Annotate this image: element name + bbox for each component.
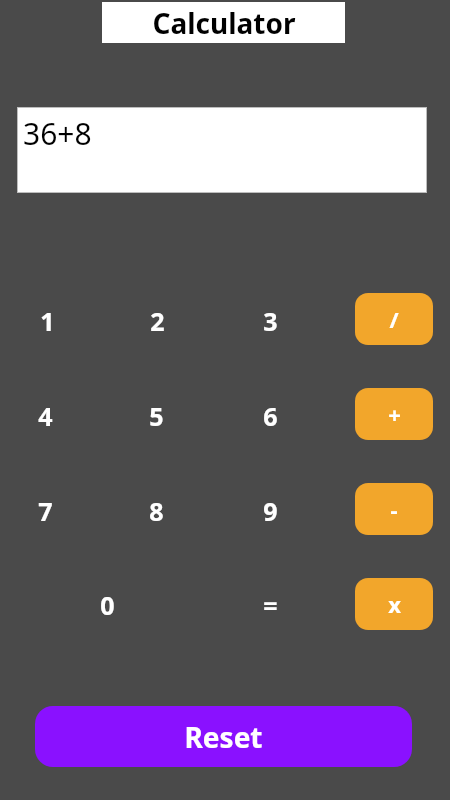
button[interactable]: Subtract — [355, 483, 433, 535]
button[interactable]: 3 — [240, 291, 300, 351]
button[interactable]: 4 — [15, 386, 75, 446]
button[interactable]: 8 — [126, 481, 186, 541]
staticText: - — [390, 494, 398, 524]
staticText: / — [389, 304, 399, 334]
button[interactable]: 6 — [240, 386, 300, 446]
staticText: 7 — [38, 494, 53, 528]
button[interactable]: Reset — [35, 706, 412, 767]
staticText: 5 — [149, 399, 164, 433]
staticText: 36+8 — [23, 113, 92, 154]
button[interactable]: 5 — [126, 386, 186, 446]
button[interactable]: 2 — [127, 291, 187, 351]
staticText: 9 — [263, 494, 278, 528]
button[interactable]: 0 — [77, 575, 137, 635]
staticText: x — [388, 589, 401, 619]
staticText: Calculator — [152, 4, 296, 42]
button[interactable]: Divide — [355, 293, 433, 345]
button[interactable]: 9 — [240, 481, 300, 541]
button[interactable]: 36+8 — [18, 108, 426, 192]
staticText: = — [263, 588, 278, 622]
staticText: 8 — [149, 494, 164, 528]
button[interactable]: 1 — [17, 291, 77, 351]
button[interactable]: = — [240, 575, 300, 635]
button[interactable]: 7 — [15, 481, 75, 541]
staticText: 2 — [150, 304, 165, 338]
button[interactable]: Multiply — [355, 578, 433, 630]
button[interactable]: Add — [355, 388, 433, 440]
staticText: 4 — [38, 399, 53, 433]
staticText: Reset — [184, 718, 263, 756]
staticText: 1 — [40, 304, 55, 338]
staticText: 0 — [100, 588, 115, 622]
staticText: 3 — [263, 304, 278, 338]
staticText: 6 — [263, 399, 278, 433]
staticText: + — [388, 399, 401, 429]
